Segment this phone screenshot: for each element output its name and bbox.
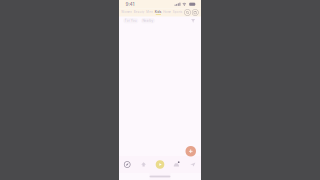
- staticText: Sports: [173, 10, 182, 14]
- button[interactable]: Men: [146, 8, 154, 16]
- button[interactable]: Women: [121, 8, 133, 16]
- button[interactable]: For You: [123, 18, 138, 23]
- button[interactable]: Nearby: [141, 18, 155, 23]
- staticText: Men: [146, 10, 153, 14]
- staticText: Home: [163, 10, 171, 14]
- button[interactable]: Beauty: [133, 8, 146, 16]
- button[interactable]: Profile: [185, 156, 201, 173]
- staticText: Nearby: [142, 19, 153, 23]
- button[interactable]: Explore: [135, 156, 152, 173]
- staticText: 9:41: [125, 1, 134, 7]
- button[interactable]: Sports: [172, 8, 183, 16]
- button[interactable]: Filter: [190, 17, 196, 24]
- staticText: Kids: [155, 10, 162, 14]
- staticText: Women: [121, 10, 132, 14]
- button[interactable]: Discover: [119, 156, 135, 173]
- button[interactable]: Play: [152, 156, 168, 173]
- button[interactable]: Search: [184, 9, 191, 16]
- staticText: For You: [125, 19, 137, 23]
- staticText: Beauty: [134, 10, 145, 14]
- button[interactable]: Create: [184, 144, 197, 158]
- button[interactable]: Cart: [192, 9, 198, 16]
- button[interactable]: Messages: [168, 156, 185, 173]
- button[interactable]: Home: [163, 8, 172, 16]
- button[interactable]: Kids: [154, 8, 163, 16]
